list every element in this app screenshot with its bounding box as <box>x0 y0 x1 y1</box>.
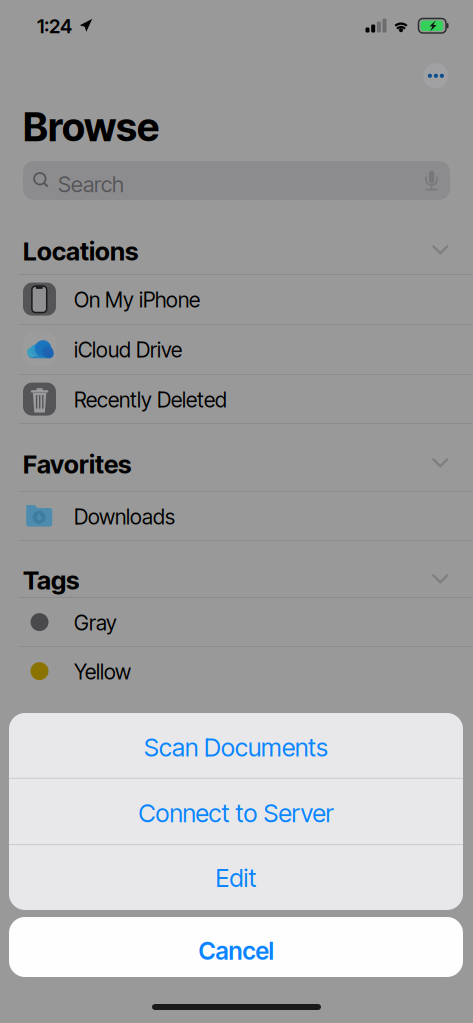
button[interactable]: Connect to Server <box>9 780 463 846</box>
button[interactable]: Tags <box>0 565 473 603</box>
staticText: Gray <box>74 610 117 635</box>
staticText: On My iPhone <box>74 287 200 312</box>
staticText: Browse <box>23 103 159 151</box>
staticText: Favorites <box>23 449 131 480</box>
button[interactable]: On My iPhone <box>0 274 473 323</box>
button[interactable]: iCloud Drive <box>0 324 473 373</box>
staticText: Recently Deleted <box>74 387 227 412</box>
button[interactable]: Edit <box>9 845 463 911</box>
button[interactable]: Yellow <box>0 646 473 695</box>
button[interactable]: Locations <box>0 236 473 274</box>
staticText: 1:24 <box>37 14 72 38</box>
button[interactable]: Gray <box>0 597 473 646</box>
staticText: Tags <box>23 565 79 596</box>
staticText: Edit <box>215 863 256 893</box>
staticText: Downloads <box>74 504 175 529</box>
staticText: Cancel <box>198 936 273 966</box>
staticText: iCloud Drive <box>74 337 182 362</box>
button[interactable]: Scan Documents <box>9 715 463 780</box>
button[interactable]: Favorites <box>0 449 473 487</box>
button[interactable]: Recently Deleted <box>0 374 473 423</box>
button[interactable]: Cancel <box>9 921 463 981</box>
staticText: Scan Documents <box>144 732 328 762</box>
button[interactable]: Downloads <box>0 491 473 540</box>
staticText: Locations <box>23 236 138 267</box>
staticText: Search <box>58 171 124 197</box>
button[interactable]: Search <box>23 161 450 200</box>
button[interactable]: More options <box>411 52 456 96</box>
staticText: Connect to Server <box>138 798 333 828</box>
staticText: Yellow <box>74 659 131 684</box>
